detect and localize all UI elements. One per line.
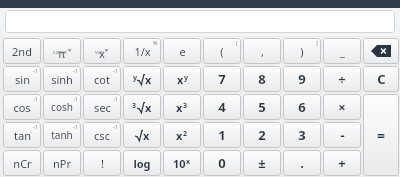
staticText: ÷ xyxy=(338,70,346,88)
button[interactable]: 2nd xyxy=(3,38,41,64)
button[interactable]: x^3 xyxy=(163,94,201,120)
staticText: x xyxy=(145,100,152,115)
staticText: -1 xyxy=(73,67,78,74)
button[interactable]: sinh xyxy=(43,66,81,92)
staticText: sec xyxy=(94,100,111,115)
button[interactable]: , xyxy=(243,38,281,64)
button[interactable]: 5 xyxy=(243,94,281,120)
button[interactable]: const π xyxy=(43,38,81,64)
button[interactable]: ÷ xyxy=(323,66,361,92)
button[interactable]: 1/x xyxy=(123,38,161,64)
staticText: tanh xyxy=(51,128,73,142)
button[interactable]: x^y xyxy=(163,66,201,92)
button[interactable]: nCr xyxy=(3,150,41,176)
button[interactable]: ! xyxy=(83,150,121,176)
button[interactable]: cos xyxy=(3,94,41,120)
button[interactable]: csc xyxy=(83,122,121,148)
button[interactable]: C xyxy=(363,66,399,92)
staticText: x xyxy=(176,100,183,115)
staticText: + xyxy=(338,154,346,172)
button[interactable]: 9 xyxy=(283,66,321,92)
staticText: = xyxy=(377,126,386,145)
button[interactable]: tan xyxy=(3,122,41,148)
staticText: 1 xyxy=(218,126,226,144)
staticText: 3 xyxy=(183,101,188,111)
staticText: 7 xyxy=(218,70,226,88)
staticText: × xyxy=(338,98,346,116)
staticText: -1 xyxy=(33,123,38,130)
button[interactable]: sec xyxy=(83,94,121,120)
staticText: e xyxy=(179,44,186,59)
staticText: -1 xyxy=(113,95,118,102)
button[interactable]: tanh xyxy=(43,122,81,148)
staticText: π xyxy=(58,46,66,61)
button[interactable]: Equals xyxy=(363,94,399,176)
button[interactable]: ) xyxy=(283,38,321,64)
staticText: -1 xyxy=(113,123,118,130)
staticText: ± xyxy=(258,154,266,172)
staticText: log xyxy=(133,156,151,171)
button[interactable]: log xyxy=(123,150,161,176)
staticText: C xyxy=(377,70,386,88)
staticText: -1 xyxy=(113,67,118,74)
button[interactable]: - xyxy=(323,122,361,148)
staticText: ) xyxy=(300,44,304,59)
button[interactable]: cosh xyxy=(43,94,81,120)
staticText: y xyxy=(133,73,137,83)
staticText: const xyxy=(53,48,67,55)
staticText: -1 xyxy=(73,95,78,102)
staticText: x xyxy=(145,72,152,87)
button[interactable]: + xyxy=(323,150,361,176)
staticText: csc xyxy=(94,128,110,143)
button[interactable]: 0 xyxy=(203,150,241,176)
button[interactable]: × xyxy=(323,94,361,120)
button[interactable]: 3 xyxy=(283,122,321,148)
button[interactable]: . xyxy=(283,150,321,176)
button[interactable]: 8 xyxy=(243,66,281,92)
button[interactable]: 10^x xyxy=(163,150,201,176)
staticText: x xyxy=(99,46,105,61)
staticText: x xyxy=(176,128,183,143)
button[interactable]: nPr xyxy=(43,150,81,176)
staticText: var xyxy=(95,48,104,55)
button[interactable]: yroot x xyxy=(123,66,161,92)
button[interactable]: 4 xyxy=(203,94,241,120)
button[interactable]: 3root x xyxy=(123,94,161,120)
button[interactable]: 6 xyxy=(283,94,321,120)
staticText: , xyxy=(261,44,264,59)
button[interactable]: 7 xyxy=(203,66,241,92)
staticText: -1 xyxy=(33,95,38,102)
button[interactable]: Backspace xyxy=(363,38,399,64)
staticText: 8 xyxy=(258,70,266,88)
staticText: sinh xyxy=(51,72,73,87)
staticText: 3 xyxy=(298,126,306,144)
button[interactable]: 2 xyxy=(243,122,281,148)
button[interactable]: e xyxy=(163,38,201,64)
staticText: ] xyxy=(316,39,318,46)
staticText: % xyxy=(153,39,158,46)
button[interactable]: cot xyxy=(83,66,121,92)
button[interactable]: _ xyxy=(323,38,361,64)
button[interactable]: 1 xyxy=(203,122,241,148)
button[interactable]: sin xyxy=(3,66,41,92)
staticText: [ xyxy=(236,39,238,46)
staticText: 6 xyxy=(298,98,306,116)
button[interactable]: var x xyxy=(83,38,121,64)
staticText: sin xyxy=(15,72,30,87)
staticText: y xyxy=(184,73,188,83)
button[interactable]: ± xyxy=(243,150,281,176)
staticText: 2 xyxy=(183,129,188,139)
button[interactable] xyxy=(5,10,395,33)
button[interactable]: ( xyxy=(203,38,241,64)
staticText: x xyxy=(186,157,191,167)
staticText: nPr xyxy=(53,156,71,171)
staticText: - xyxy=(340,126,345,144)
button[interactable]: root x xyxy=(123,122,161,148)
staticText: 1/x xyxy=(134,44,151,59)
button[interactable]: x^2 xyxy=(163,122,201,148)
staticText: _ xyxy=(340,44,345,59)
staticText: 3 xyxy=(132,101,137,111)
staticText: ( xyxy=(220,44,224,59)
staticText: ! xyxy=(101,156,104,171)
staticText: . xyxy=(300,154,304,172)
